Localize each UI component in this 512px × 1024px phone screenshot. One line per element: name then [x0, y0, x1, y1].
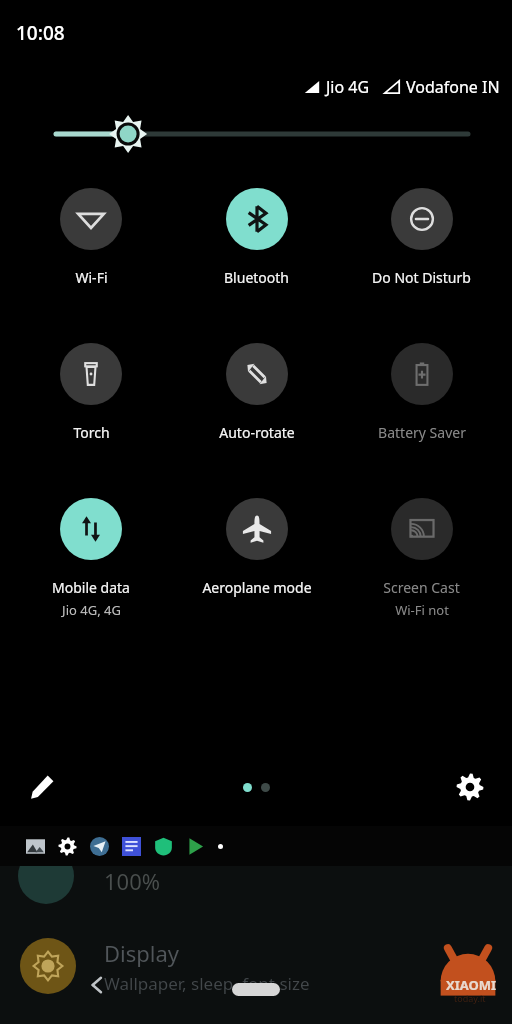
staticText: Vodafone IN [406, 76, 500, 98]
staticText: Battery Saver [378, 423, 466, 442]
button[interactable]: Aeroplane mode [174, 496, 339, 599]
staticText: Wi-Fi [75, 268, 108, 287]
staticText: Aeroplane mode [202, 578, 312, 597]
staticText: Do Not Disturb [372, 268, 471, 287]
button[interactable]: Edit tiles [20, 765, 64, 809]
button[interactable]: Settings [448, 765, 492, 809]
staticText: Bluetooth [224, 268, 289, 287]
staticText: Mobile data [52, 578, 130, 597]
staticText: 100% [104, 866, 161, 896]
staticText: today.it [454, 992, 486, 1004]
staticText: Wallpaper, sleep, font size [104, 972, 310, 995]
staticText: Torch [73, 423, 110, 442]
button[interactable]: Auto-rotate [174, 341, 339, 444]
staticText: 10:08 [16, 20, 65, 46]
staticText: Display [104, 938, 180, 968]
button[interactable]: Torch [8, 341, 174, 444]
button[interactable]: Battery Saver [339, 341, 504, 444]
button[interactable]: Mobile data [8, 496, 174, 621]
button[interactable]: Bluetooth [174, 186, 339, 289]
staticText: Auto-rotate [219, 423, 295, 442]
button[interactable] [22, 108, 490, 160]
staticText: Jio 4G, 4G [62, 601, 121, 619]
button[interactable]: Do Not Disturb [339, 186, 504, 289]
staticText: Wi-Fi not [395, 601, 449, 619]
button[interactable]: Screen Cast [339, 496, 504, 621]
staticText: XIAOMI [446, 976, 497, 994]
staticText: Screen Cast [383, 578, 460, 597]
button[interactable]: Wi-Fi [8, 186, 174, 289]
staticText: Jio 4G [326, 76, 370, 98]
